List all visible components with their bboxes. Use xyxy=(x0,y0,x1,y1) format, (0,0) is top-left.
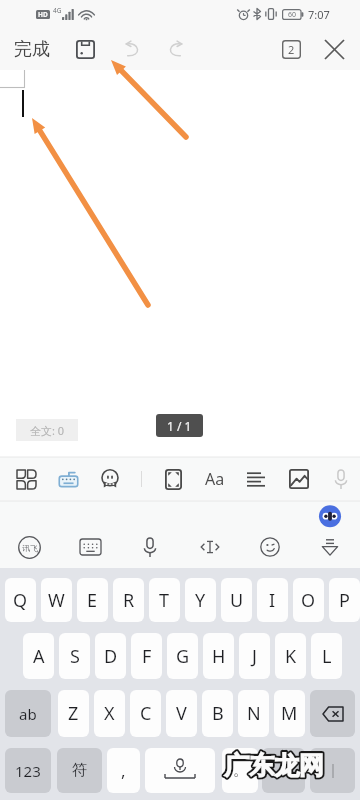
staticText: 。 xyxy=(233,761,248,780)
button[interactable]: ab xyxy=(5,690,51,737)
staticText: 广东龙网 xyxy=(224,750,324,781)
button[interactable]: 全文: 0 xyxy=(16,419,78,441)
staticText: R xyxy=(123,588,135,613)
staticText: A xyxy=(33,644,45,669)
button[interactable]: Stickers xyxy=(89,458,131,500)
staticText: L xyxy=(322,644,332,669)
button[interactable]: Space xyxy=(145,748,215,793)
staticText: , xyxy=(121,759,126,782)
staticText: P xyxy=(339,588,350,613)
button[interactable]: Hide keyboard xyxy=(309,526,351,568)
staticText: S xyxy=(70,644,80,669)
button[interactable]: 123 xyxy=(5,748,51,793)
staticText: D xyxy=(104,644,118,669)
staticText: 完成 xyxy=(14,38,50,61)
button[interactable]: Y xyxy=(185,578,216,622)
button[interactable]: D xyxy=(95,633,126,679)
staticText: 符 xyxy=(72,761,87,780)
button[interactable]: Page count xyxy=(275,33,307,65)
button[interactable]: Image xyxy=(278,458,320,500)
staticText: O xyxy=(301,588,316,613)
button[interactable]: G xyxy=(167,633,198,679)
button[interactable]: N xyxy=(238,690,269,737)
button[interactable]: E xyxy=(77,578,108,622)
staticText: Aa xyxy=(205,468,225,490)
button[interactable]: Move cursor xyxy=(189,526,231,568)
button[interactable]: H xyxy=(203,633,234,679)
staticText: H xyxy=(212,644,226,669)
staticText: 2 xyxy=(288,42,295,57)
button[interactable]: 完成 xyxy=(6,34,58,65)
staticText: HD xyxy=(38,10,48,19)
staticText: K xyxy=(285,644,297,669)
button[interactable]: Redo xyxy=(160,33,192,65)
staticText: ab xyxy=(19,704,37,724)
button[interactable]: U xyxy=(221,578,252,622)
staticText: 全文: 0 xyxy=(30,423,65,438)
staticText: T xyxy=(159,588,170,613)
button[interactable]: P xyxy=(329,578,360,622)
button[interactable]: Keyboard style xyxy=(47,458,89,500)
button[interactable]: , xyxy=(107,748,140,793)
button[interactable]: 1 / 1 xyxy=(156,414,203,437)
button[interactable]: W xyxy=(41,578,72,622)
staticText: C xyxy=(140,701,152,726)
staticText: 60 xyxy=(288,10,297,20)
staticText: 4G xyxy=(53,6,62,15)
staticText: 7:07 xyxy=(308,7,330,22)
button[interactable]: Apps xyxy=(5,458,47,500)
button[interactable]: S xyxy=(59,633,90,679)
staticText: Q xyxy=(13,588,28,613)
staticText: G xyxy=(176,644,190,669)
button[interactable]: 符 xyxy=(57,748,102,793)
staticText: X xyxy=(104,701,115,726)
button[interactable]: T xyxy=(149,578,180,622)
staticText: Y xyxy=(195,588,206,613)
staticText: J xyxy=(252,644,257,669)
staticText: 1 / 1 xyxy=(167,418,192,434)
button[interactable]: M xyxy=(274,690,305,737)
staticText: F xyxy=(142,644,152,669)
staticText: W xyxy=(48,588,65,613)
button[interactable]: V xyxy=(166,690,197,737)
button[interactable]: Q xyxy=(5,578,36,622)
staticText: U xyxy=(230,588,244,613)
staticText: M xyxy=(281,701,298,726)
button[interactable]: O xyxy=(293,578,324,622)
button[interactable]: Keyboard xyxy=(69,526,111,568)
button[interactable]: Voice input xyxy=(129,526,171,568)
button[interactable]: R xyxy=(113,578,144,622)
button[interactable]: Crop xyxy=(152,458,194,500)
button[interactable]: Emoji xyxy=(249,526,291,568)
staticText: E xyxy=(87,588,98,613)
staticText: N xyxy=(247,701,261,726)
button[interactable]: L xyxy=(311,633,342,679)
button[interactable]: Close xyxy=(318,33,350,65)
button[interactable]: C xyxy=(130,690,161,737)
staticText: 广东龙网 xyxy=(224,750,324,781)
staticText: Z xyxy=(68,701,79,726)
button[interactable]: Input method xyxy=(8,526,50,568)
button[interactable]: A xyxy=(23,633,54,679)
button[interactable]: Save xyxy=(69,33,101,65)
button[interactable]: Symbol xyxy=(262,748,305,793)
button[interactable]: Align xyxy=(235,458,277,500)
button[interactable]: K xyxy=(275,633,306,679)
staticText: B xyxy=(212,701,224,726)
staticText: I xyxy=(269,588,276,613)
staticText: V xyxy=(176,701,187,726)
button[interactable]: Voice xyxy=(320,458,360,500)
button[interactable]: Backspace xyxy=(310,690,355,737)
button[interactable]: Undo xyxy=(116,33,148,65)
button[interactable]: Z xyxy=(58,690,89,737)
button[interactable]: Font size xyxy=(194,458,236,500)
button[interactable]: Enter xyxy=(310,748,355,793)
button[interactable]: J xyxy=(239,633,270,679)
staticText: 123 xyxy=(15,761,41,781)
button[interactable]: X xyxy=(94,690,125,737)
staticText: 讯飞 xyxy=(22,543,38,553)
button[interactable]: I xyxy=(257,578,288,622)
button[interactable]: B xyxy=(202,690,233,737)
button[interactable]: F xyxy=(131,633,162,679)
button[interactable]: 。 xyxy=(222,748,258,793)
